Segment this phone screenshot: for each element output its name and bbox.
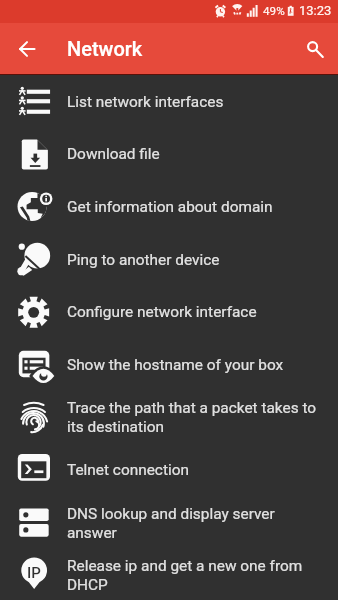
button[interactable]: Show the hostname of your box xyxy=(0,338,338,391)
button[interactable]: Download file xyxy=(0,128,338,180)
staticText: List network interfaces xyxy=(67,93,224,111)
button[interactable]: Telnet connection xyxy=(0,443,338,496)
button[interactable]: Ping to another device xyxy=(0,233,338,286)
staticText: Network xyxy=(67,37,143,60)
staticText: Ping to another device xyxy=(67,251,220,269)
staticText: Telnet connection xyxy=(67,461,189,479)
staticText: Get information about domain xyxy=(67,198,273,216)
staticText: IP xyxy=(27,564,41,582)
staticText: Trace the path that a packet takes to it… xyxy=(67,399,322,435)
staticText: Release ip and get a new one from DHCP xyxy=(67,557,322,593)
button[interactable]: DNS lookup and display server answer xyxy=(0,496,338,549)
button[interactable]: IP xyxy=(0,549,338,600)
button[interactable]: Search xyxy=(294,28,336,70)
staticText: Show the hostname of your box xyxy=(67,356,284,374)
button[interactable]: Trace the path that a packet takes to it… xyxy=(0,391,338,443)
button[interactable]: Back xyxy=(5,27,49,71)
staticText: 49% xyxy=(263,4,285,18)
staticText: Configure network interface xyxy=(67,303,257,321)
button[interactable]: List network interfaces xyxy=(0,75,338,128)
button[interactable]: Get information about domain xyxy=(0,180,338,233)
staticText: DNS lookup and display server answer xyxy=(67,505,322,541)
staticText: 13:23 xyxy=(299,3,332,18)
staticText: Download file xyxy=(67,145,160,163)
button[interactable]: Configure network interface xyxy=(0,286,338,338)
